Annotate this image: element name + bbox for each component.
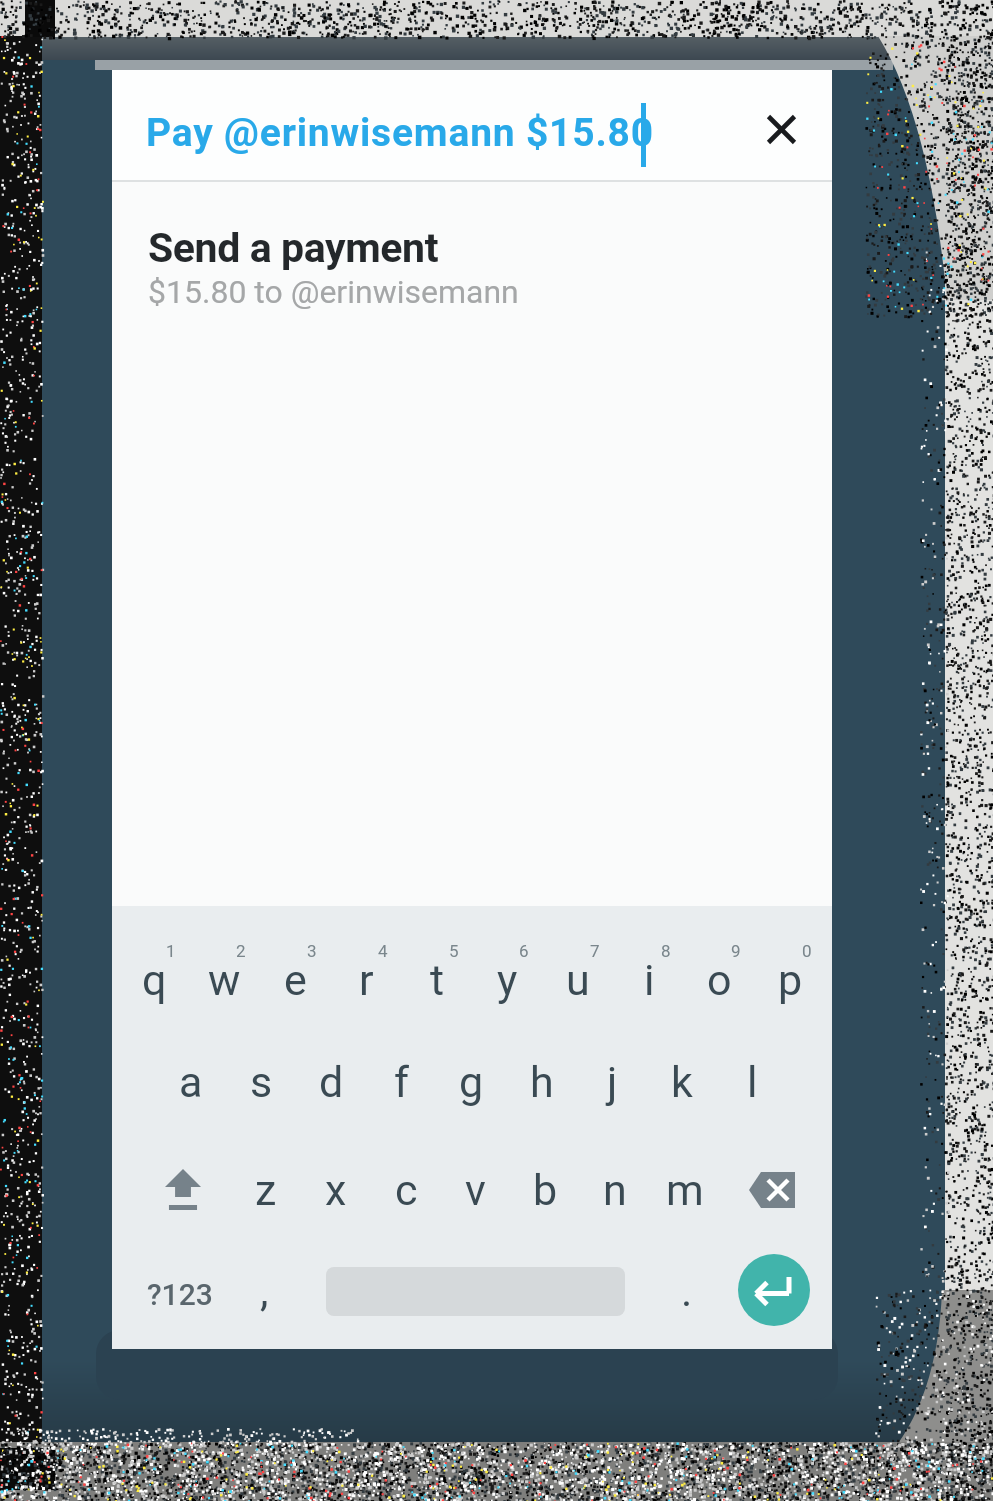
staticText: s	[250, 1057, 273, 1107]
button[interactable]: w	[189, 925, 259, 1035]
staticText: w	[208, 955, 241, 1005]
staticText: Pay @erinwisemann $15.80	[146, 110, 654, 156]
staticText: u	[566, 955, 590, 1005]
staticText: o	[707, 955, 732, 1005]
button[interactable]: d	[296, 1027, 366, 1137]
button[interactable]: z	[231, 1135, 301, 1245]
button[interactable]: Send a payment	[112, 182, 832, 322]
button[interactable]: l	[717, 1027, 787, 1137]
button[interactable]: ,	[229, 1236, 299, 1346]
staticText: c	[395, 1165, 418, 1215]
staticText: z	[255, 1165, 277, 1215]
staticText: ,	[260, 1266, 269, 1316]
button[interactable]	[754, 102, 808, 156]
staticText: 0	[802, 941, 812, 961]
button[interactable]: o	[684, 925, 754, 1035]
button[interactable]: n	[580, 1135, 650, 1245]
staticText: v	[465, 1165, 486, 1215]
button[interactable]: y	[472, 925, 542, 1035]
staticText: e	[284, 955, 307, 1005]
button[interactable]: s	[226, 1027, 296, 1137]
staticText: b	[533, 1165, 558, 1215]
button[interactable]: c	[371, 1135, 441, 1245]
staticText: 1	[166, 941, 176, 961]
staticText: g	[459, 1057, 484, 1107]
button[interactable]: v	[440, 1135, 510, 1245]
button[interactable]: a	[156, 1027, 226, 1137]
staticText: 9	[731, 941, 741, 961]
button[interactable]: i	[614, 925, 684, 1035]
staticText: 3	[307, 941, 317, 961]
staticText: a	[179, 1057, 203, 1107]
button[interactable]	[729, 1135, 819, 1245]
staticText: l	[747, 1057, 758, 1107]
button[interactable]: q	[119, 925, 189, 1035]
staticText: .	[681, 1266, 693, 1316]
staticText: Send a payment	[148, 224, 439, 272]
staticText: ?123	[147, 1277, 213, 1312]
button[interactable]: e	[260, 925, 330, 1035]
staticText: 5	[449, 941, 459, 961]
staticText: i	[644, 955, 655, 1005]
staticText: 8	[661, 941, 671, 961]
staticText: 7	[590, 941, 600, 961]
staticText: q	[142, 955, 167, 1005]
staticText: t	[430, 955, 445, 1005]
staticText: f	[394, 1057, 409, 1107]
button[interactable]: p	[755, 925, 825, 1035]
staticText: $15.80 to @erinwisemann	[148, 273, 519, 311]
staticText: r	[359, 955, 374, 1005]
button[interactable]: b	[510, 1135, 580, 1245]
staticText: k	[671, 1057, 693, 1107]
button[interactable]: k	[647, 1027, 717, 1137]
button[interactable]: m	[650, 1135, 720, 1245]
button[interactable]: g	[436, 1027, 506, 1137]
staticText: p	[778, 955, 803, 1005]
button[interactable]: r	[331, 925, 401, 1035]
button[interactable]: .	[652, 1236, 722, 1346]
button[interactable]: Pay @erinwisemann $15.80	[112, 70, 832, 180]
staticText: 2	[236, 941, 246, 961]
button[interactable]: ?123	[140, 1239, 220, 1349]
staticText: 4	[378, 941, 388, 961]
staticText: x	[325, 1165, 347, 1215]
button[interactable]	[738, 1254, 810, 1326]
button[interactable]: h	[507, 1027, 577, 1137]
staticText: m	[666, 1165, 704, 1215]
button[interactable]: t	[402, 925, 472, 1035]
button[interactable]: u	[543, 925, 613, 1035]
staticText: h	[530, 1057, 554, 1107]
staticText: d	[319, 1057, 344, 1107]
staticText: n	[603, 1165, 627, 1215]
button[interactable]: j	[577, 1027, 647, 1137]
button[interactable]	[143, 1135, 223, 1245]
staticText: j	[607, 1057, 618, 1107]
button[interactable]: x	[301, 1135, 371, 1245]
staticText: y	[497, 955, 518, 1005]
staticText: 6	[519, 941, 529, 961]
button[interactable]: f	[366, 1027, 436, 1137]
